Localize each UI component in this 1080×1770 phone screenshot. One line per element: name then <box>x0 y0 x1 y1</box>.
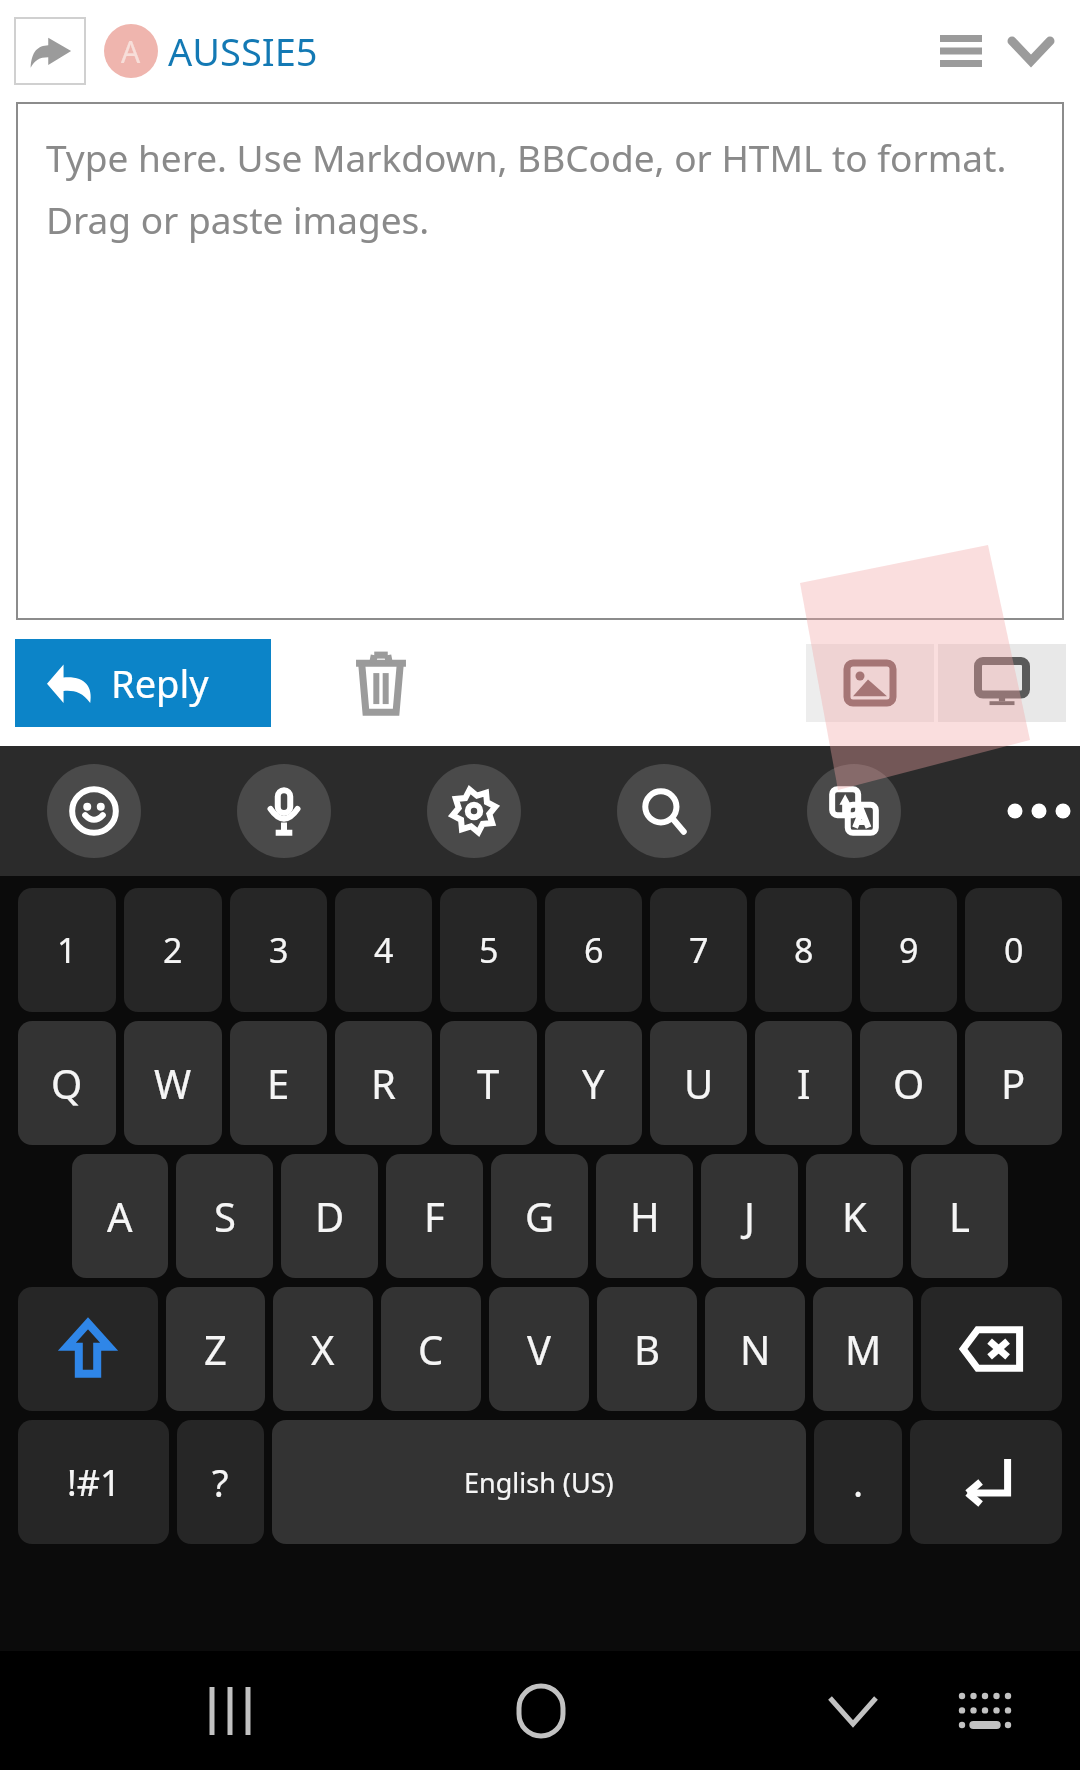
staticText: 9 <box>899 927 919 973</box>
button[interactable]: 3 <box>230 888 327 1012</box>
button[interactable]: Switch keyboard <box>930 1656 1040 1766</box>
button[interactable]: J <box>701 1154 798 1278</box>
button[interactable]: translate <box>807 764 901 858</box>
button[interactable]: V <box>489 1287 589 1411</box>
button[interactable]: 2 <box>124 888 222 1012</box>
button[interactable]: B <box>597 1287 697 1411</box>
button[interactable]: I <box>755 1021 852 1145</box>
button[interactable]: 9 <box>860 888 957 1012</box>
button[interactable]: L <box>911 1154 1008 1278</box>
button[interactable]: Hide keyboard <box>798 1656 908 1766</box>
staticText: U <box>684 1056 714 1110</box>
button[interactable]: G <box>491 1154 588 1278</box>
staticText: Q <box>51 1056 83 1110</box>
button[interactable]: A <box>104 24 318 78</box>
button[interactable]: T <box>440 1021 537 1145</box>
staticText: 0 <box>1004 927 1024 973</box>
staticText: 5 <box>479 927 499 973</box>
staticText: E <box>267 1056 290 1110</box>
button[interactable]: 6 <box>545 888 642 1012</box>
staticText: V <box>527 1322 551 1376</box>
button[interactable]: Desktop view <box>938 644 1066 722</box>
button[interactable]: S <box>176 1154 273 1278</box>
button[interactable]: Recents <box>175 1656 285 1766</box>
button[interactable]: X <box>273 1287 373 1411</box>
button[interactable]: R <box>335 1021 432 1145</box>
staticText: C <box>418 1322 444 1376</box>
button[interactable]: U <box>650 1021 747 1145</box>
staticText: F <box>424 1189 445 1243</box>
button[interactable]: Enter <box>910 1420 1062 1544</box>
button[interactable]: 8 <box>755 888 852 1012</box>
button[interactable]: Z <box>166 1287 265 1411</box>
staticText: 2 <box>163 927 183 973</box>
staticText: R <box>371 1056 396 1110</box>
button[interactable]: Q <box>18 1021 116 1145</box>
button[interactable]: Shift <box>18 1287 158 1411</box>
staticText: 6 <box>584 927 604 973</box>
button[interactable]: Y <box>545 1021 642 1145</box>
button[interactable]: Share <box>14 17 86 85</box>
button[interactable]: C <box>381 1287 481 1411</box>
button[interactable]: Reply <box>15 639 271 727</box>
staticText: !#1 <box>67 1458 121 1507</box>
staticText: W <box>154 1056 192 1110</box>
staticText: A <box>107 1189 133 1243</box>
staticText: K <box>842 1189 867 1243</box>
button[interactable]: mic <box>237 764 331 858</box>
button[interactable]: K <box>806 1154 903 1278</box>
staticText: J <box>744 1189 755 1243</box>
staticText: H <box>630 1189 660 1243</box>
button[interactable]: !#1 <box>18 1420 169 1544</box>
staticText: Y <box>582 1056 605 1110</box>
staticText: A <box>121 31 141 72</box>
staticText: L <box>949 1189 970 1243</box>
staticText: Z <box>204 1322 227 1376</box>
staticText: 1 <box>57 927 77 973</box>
button[interactable]: M <box>813 1287 913 1411</box>
button[interactable]: ? <box>177 1420 264 1544</box>
button[interactable]: 1 <box>18 888 116 1012</box>
staticText: O <box>893 1056 925 1110</box>
button[interactable]: More options <box>997 769 1080 853</box>
staticText: P <box>1001 1056 1026 1110</box>
button[interactable]: F <box>386 1154 483 1278</box>
button[interactable]: Menu <box>924 14 998 88</box>
staticText: S <box>214 1189 236 1243</box>
button[interactable]: 4 <box>335 888 432 1012</box>
button[interactable]: 5 <box>440 888 537 1012</box>
button[interactable]: emoji <box>47 764 141 858</box>
button[interactable]: A <box>72 1154 168 1278</box>
button[interactable]: W <box>124 1021 222 1145</box>
button[interactable]: settings <box>427 764 521 858</box>
staticText: D <box>315 1189 345 1243</box>
staticText: N <box>740 1322 771 1376</box>
button[interactable]: Expand <box>998 18 1064 84</box>
button[interactable]: Insert image <box>806 644 934 722</box>
staticText: . <box>853 1456 864 1508</box>
button[interactable]: O <box>860 1021 957 1145</box>
button[interactable]: 0 <box>965 888 1062 1012</box>
staticText: Reply <box>111 657 209 709</box>
button[interactable]: E <box>230 1021 327 1145</box>
staticText: AUSSIE5 <box>168 25 318 77</box>
button[interactable]: Type here. Use Markdown, BBCode, or HTML… <box>16 102 1064 620</box>
button[interactable]: 7 <box>650 888 747 1012</box>
staticText: ? <box>212 1456 229 1508</box>
button[interactable]: Home <box>486 1656 596 1766</box>
button[interactable]: English (US) <box>272 1420 806 1544</box>
staticText: I <box>797 1056 811 1110</box>
staticText: B <box>634 1322 660 1376</box>
staticText: T <box>477 1056 500 1110</box>
button[interactable]: . <box>814 1420 902 1544</box>
staticText: Type here. Use Markdown, BBCode, or HTML… <box>46 132 1008 245</box>
button[interactable]: search <box>617 764 711 858</box>
button[interactable]: N <box>705 1287 805 1411</box>
button[interactable]: P <box>965 1021 1062 1145</box>
staticText: 4 <box>374 927 394 973</box>
button[interactable]: H <box>596 1154 693 1278</box>
staticText: 7 <box>689 927 709 973</box>
button[interactable]: Delete <box>333 635 429 731</box>
button[interactable]: Backspace <box>921 1287 1062 1411</box>
button[interactable]: D <box>281 1154 378 1278</box>
